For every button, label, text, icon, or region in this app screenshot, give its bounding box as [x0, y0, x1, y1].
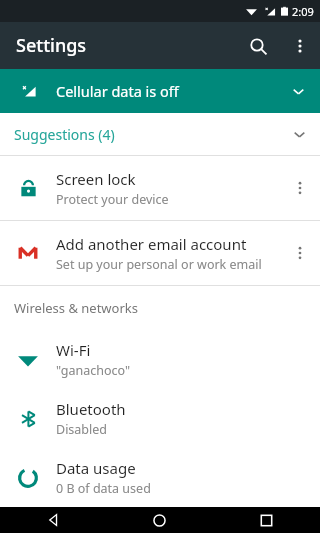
button[interactable]: Screen lock [0, 156, 320, 220]
button[interactable]: Suggestion options [280, 168, 320, 208]
button[interactable]: Home [106, 507, 213, 533]
staticText: Add another email account [56, 234, 247, 254]
other: Expand [276, 69, 320, 113]
staticText: Cellular data is off [56, 81, 179, 101]
button[interactable]: Suggestion options [280, 233, 320, 273]
staticText: Settings [16, 33, 87, 58]
button[interactable]: Recent apps [213, 507, 320, 533]
staticText: Wi-Fi [56, 340, 91, 360]
button[interactable]: Search [236, 24, 280, 68]
button[interactable]: Data usage [0, 448, 320, 507]
button[interactable]: Back [0, 507, 106, 533]
staticText: Screen lock [56, 169, 136, 189]
staticText: Data usage [56, 458, 136, 478]
staticText: Disabled [56, 421, 108, 438]
button[interactable]: Suggestions (4) [0, 113, 320, 155]
staticText: Bluetooth [56, 399, 126, 419]
other: Collapse suggestions [278, 113, 320, 155]
button[interactable]: Cellular data is off [0, 69, 320, 113]
button[interactable]: Add another email account [0, 221, 320, 285]
staticText: 2:09 [292, 4, 314, 19]
staticText: 0 B of data used [56, 480, 151, 497]
button[interactable]: Bluetooth [0, 389, 320, 448]
staticText: Wireless & networks [14, 299, 138, 317]
staticText: "ganachoco" [56, 362, 130, 379]
staticText: Suggestions (4) [14, 125, 115, 144]
button[interactable]: Wi-Fi [0, 330, 320, 389]
staticText: Set up your personal or work email [56, 256, 262, 273]
staticText: Protect your device [56, 191, 169, 208]
button[interactable]: More options [280, 26, 320, 66]
